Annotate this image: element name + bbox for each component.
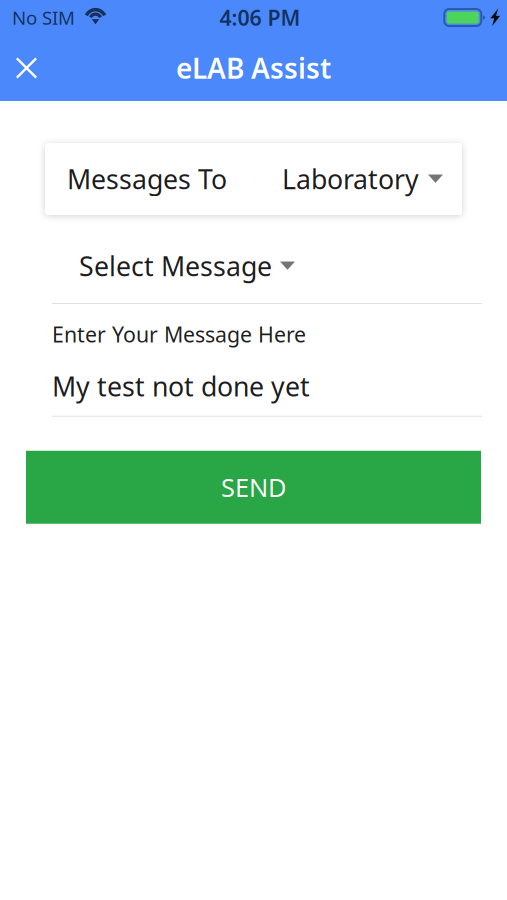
staticText: Messages To bbox=[67, 161, 227, 197]
button[interactable]: Select Message bbox=[0, 251, 507, 304]
staticText: My test not done yet bbox=[52, 368, 310, 404]
button[interactable]: Messages To bbox=[45, 143, 462, 215]
staticText: No SIM bbox=[12, 5, 75, 30]
staticText: Laboratory bbox=[282, 161, 419, 197]
staticText: Select Message bbox=[79, 248, 272, 284]
button[interactable]: Close bbox=[0, 35, 53, 101]
staticText: eLAB Assist bbox=[176, 49, 331, 87]
staticText: Enter Your Message Here bbox=[52, 320, 306, 348]
staticText: SEND bbox=[221, 470, 286, 504]
button[interactable]: SEND bbox=[26, 451, 481, 524]
staticText: 4:06 PM bbox=[219, 3, 300, 32]
button[interactable]: Enter Your Message Here bbox=[0, 320, 507, 417]
